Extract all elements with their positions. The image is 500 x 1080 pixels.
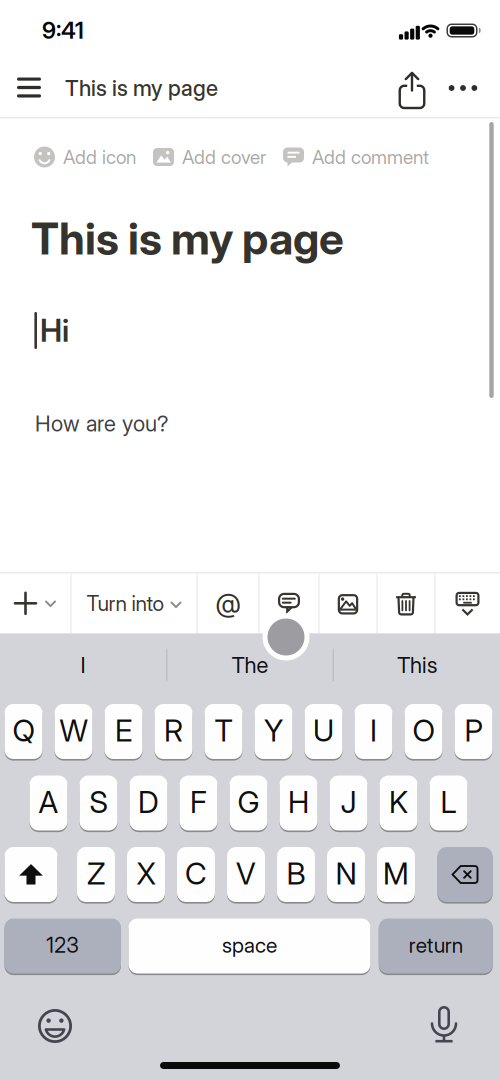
button[interactable]: Z [77, 846, 115, 903]
button[interactable]: return [379, 917, 493, 974]
staticText: V [236, 855, 256, 892]
staticText: K [389, 784, 408, 820]
button[interactable]: C [177, 846, 215, 903]
staticText: Y [264, 712, 283, 749]
button[interactable]: K [379, 774, 417, 831]
button[interactable]: G [229, 774, 267, 831]
button[interactable]: A [29, 774, 67, 831]
staticText: R [164, 712, 183, 749]
button[interactable]: Backspace [437, 846, 492, 903]
staticText: 9:41 [42, 17, 84, 44]
staticText: A [38, 784, 58, 820]
button[interactable]: H [279, 774, 317, 831]
button[interactable]: B [277, 846, 315, 903]
button[interactable]: E [104, 703, 142, 760]
staticText: This [397, 652, 437, 678]
staticText: How are you? [35, 410, 169, 437]
button[interactable]: Add cover [153, 145, 266, 168]
staticText: Add comment [312, 145, 429, 168]
button[interactable]: R [154, 703, 192, 760]
button[interactable]: This [342, 637, 492, 693]
button[interactable]: 123 [4, 917, 121, 974]
staticText: F [190, 784, 207, 820]
staticText: L [440, 784, 456, 820]
staticText: Add cover [182, 145, 266, 168]
button[interactable]: Q [4, 703, 42, 760]
staticText: return [409, 932, 463, 958]
button[interactable]: Share [390, 65, 434, 109]
button[interactable]: The [175, 637, 325, 693]
staticText: D [138, 784, 159, 820]
button[interactable]: Mention [197, 573, 259, 633]
staticText: N [335, 855, 356, 892]
staticText: This is my page [31, 212, 344, 265]
staticText: P [464, 712, 482, 749]
staticText: E [115, 712, 132, 749]
button[interactable]: I [8, 637, 158, 693]
staticText: space [222, 932, 277, 958]
button[interactable]: P [454, 703, 492, 760]
button[interactable]: F [179, 774, 217, 831]
staticText: B [286, 855, 305, 892]
button[interactable]: O [404, 703, 442, 760]
button[interactable]: U [304, 703, 342, 760]
staticText: 123 [46, 932, 79, 958]
button[interactable]: Delete [377, 574, 435, 634]
button[interactable]: V [227, 846, 265, 903]
staticText: C [185, 855, 207, 892]
staticText: Add icon [63, 145, 136, 168]
staticText: G [237, 784, 259, 820]
button[interactable]: Dismiss keyboard [435, 574, 500, 634]
button[interactable]: Emoji [30, 1001, 80, 1051]
staticText: O [412, 712, 434, 749]
staticText: U [313, 712, 334, 749]
staticText: J [340, 784, 356, 820]
button[interactable]: Comment [259, 572, 319, 632]
staticText: @ [215, 588, 240, 619]
button[interactable]: Turn into [71, 573, 197, 633]
staticText: I [370, 712, 377, 749]
staticText: Q [12, 712, 34, 749]
button[interactable]: Menu [7, 65, 51, 109]
button[interactable]: D [129, 774, 167, 831]
button[interactable]: J [329, 774, 367, 831]
button[interactable]: Shift [4, 846, 57, 903]
button[interactable]: Y [254, 703, 292, 760]
staticText: The [231, 652, 268, 678]
staticText: Z [87, 855, 105, 892]
button[interactable]: Add block [0, 573, 71, 633]
button[interactable]: S [79, 774, 117, 831]
button[interactable]: T [204, 703, 242, 760]
staticText: S [89, 784, 107, 820]
button[interactable]: Dictation [419, 1000, 469, 1050]
staticText: I [80, 652, 85, 678]
button[interactable]: Add comment [283, 145, 429, 168]
button[interactable]: X [127, 846, 165, 903]
staticText: W [59, 712, 87, 749]
staticText: H [288, 784, 309, 820]
button[interactable]: More [441, 66, 485, 110]
staticText: Turn into [86, 591, 164, 616]
staticText: T [214, 712, 232, 749]
button[interactable]: W [54, 703, 92, 760]
button[interactable]: I [354, 703, 392, 760]
staticText: Hi [40, 312, 69, 349]
button[interactable]: N [327, 846, 365, 903]
button[interactable]: Insert image [319, 574, 377, 634]
button[interactable]: Add icon [34, 145, 136, 168]
staticText: X [136, 855, 155, 892]
button[interactable]: L [429, 774, 467, 831]
button[interactable]: space [128, 917, 370, 974]
staticText: M [383, 855, 409, 892]
button[interactable]: M [377, 846, 415, 903]
staticText: This is my page [65, 75, 218, 101]
